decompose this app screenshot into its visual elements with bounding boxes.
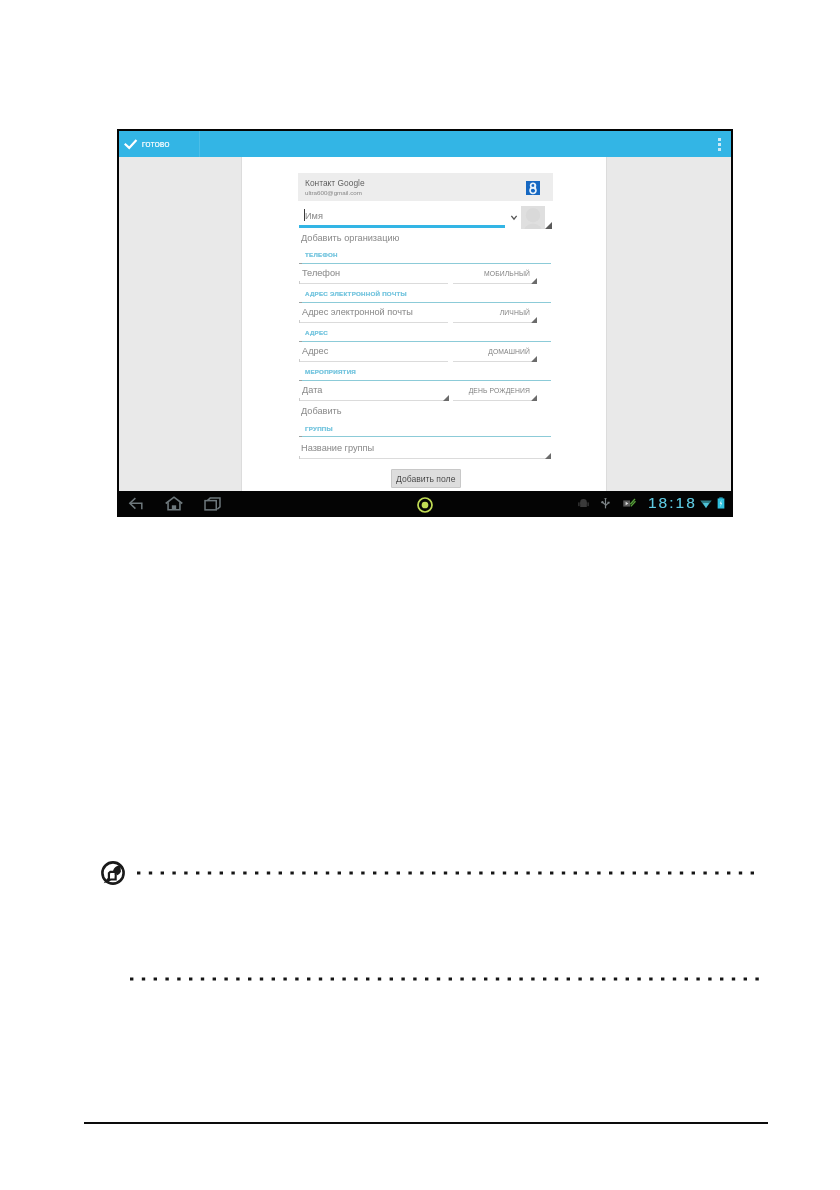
staticText: 18:18 xyxy=(648,494,697,511)
button[interactable]: Screenshot xyxy=(119,491,145,514)
staticText: АДРЕС ЭЛЕКТРОННОЙ ПОЧТЫ xyxy=(305,290,407,297)
staticText: ТЕЛЕФОН xyxy=(305,251,338,258)
staticText: Контакт Google xyxy=(305,178,365,187)
staticText: Адрес электронной почты xyxy=(302,307,413,317)
button[interactable]: Recent apps xyxy=(119,491,151,516)
staticText: ДЕНЬ РОЖДЕНИЯ xyxy=(468,387,530,395)
staticText: ultra600@gmail.com xyxy=(305,189,362,196)
button[interactable]: Home xyxy=(119,491,151,516)
staticText: АДРЕС xyxy=(305,329,329,336)
staticText: Добавить поле xyxy=(396,474,456,484)
staticText: Добавить организацию xyxy=(301,233,400,243)
staticText: Адрес xyxy=(302,346,329,356)
staticText: МЕРОПРИЯТИЯ xyxy=(305,368,357,375)
staticText: Телефон xyxy=(302,268,341,278)
staticText: ГРУППЫ xyxy=(305,425,333,432)
staticText: ЛИЧНЫЙ xyxy=(499,309,530,317)
staticText: ГОТОВО xyxy=(142,141,170,148)
staticText: ДОМАШНИЙ xyxy=(488,348,530,356)
button[interactable]: Back xyxy=(119,491,151,516)
button[interactable]: ГОТОВО xyxy=(119,131,184,157)
staticText: Имя xyxy=(305,211,323,221)
staticText: Дата xyxy=(302,385,323,395)
staticText: Название группы xyxy=(301,443,375,453)
staticText: МОБИЛЬНЫЙ xyxy=(484,270,530,278)
button[interactable]: More options xyxy=(707,131,731,157)
staticText: Добавить xyxy=(301,406,342,416)
